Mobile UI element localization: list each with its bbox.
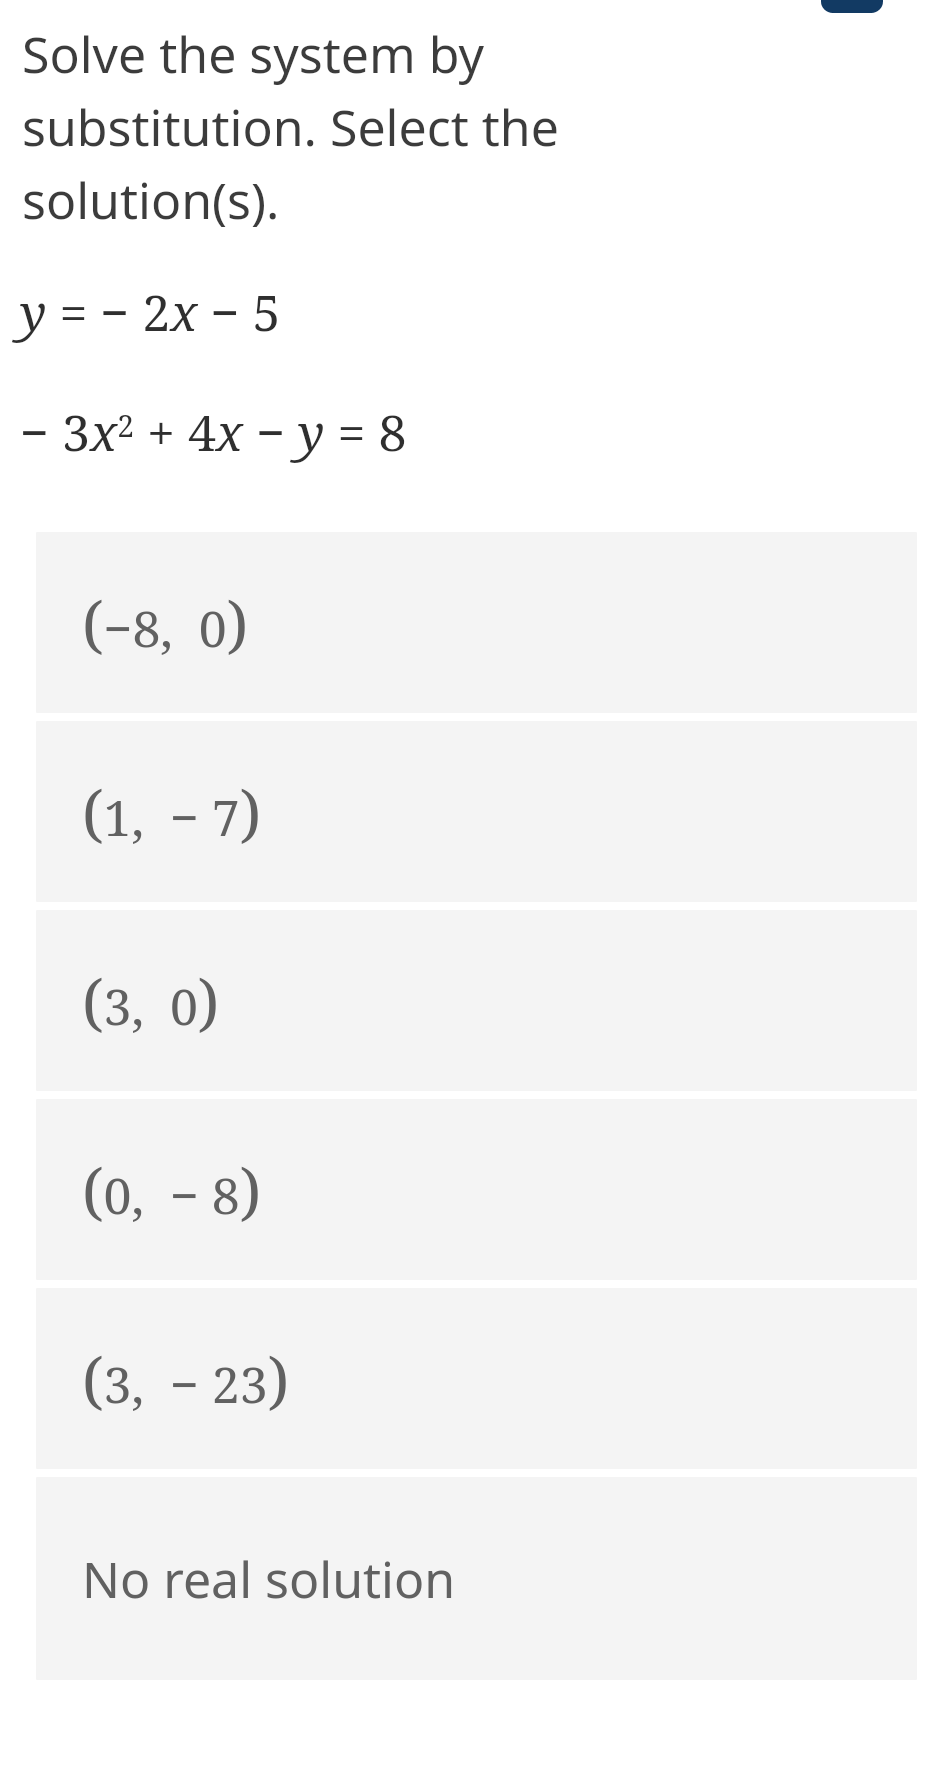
staticText: (−8, 0) (82, 581, 249, 665)
button[interactable]: (−8, 0) (36, 532, 917, 713)
button[interactable]: No real solution (36, 1477, 917, 1680)
staticText: − 3x2 + 4x − y = 8 (20, 398, 407, 466)
staticText: (3, 0) (82, 959, 220, 1043)
staticText: (1, − 7) (82, 770, 262, 854)
staticText: No real solution (82, 1545, 456, 1613)
button[interactable]: (0, − 8) (36, 1099, 917, 1280)
button[interactable]: (3, 0) (36, 910, 917, 1091)
staticText: Solve the system by substitution. Select… (22, 20, 559, 234)
other: Status indicator (821, 0, 883, 13)
staticText: (3, − 23) (82, 1337, 290, 1421)
button[interactable]: (1, − 7) (36, 721, 917, 902)
staticText: y = − 2x − 5 (20, 278, 281, 346)
staticText: (0, − 8) (82, 1148, 262, 1232)
button[interactable]: (3, − 23) (36, 1288, 917, 1469)
